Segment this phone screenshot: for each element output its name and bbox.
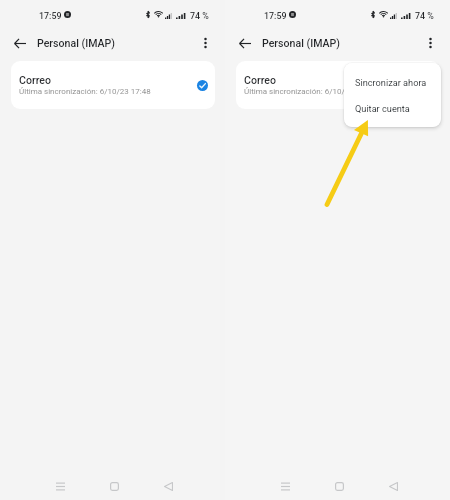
- staticText: 74 %: [190, 11, 209, 21]
- button[interactable]: Correo: [11, 61, 215, 109]
- button[interactable]: Back: [155, 473, 181, 499]
- staticText: Correo: [244, 74, 277, 86]
- staticText: Última sincronización: 6/10/23 17:48: [19, 87, 151, 96]
- staticText: Última sincronización: 6/10/23 17:48: [244, 87, 376, 96]
- staticText: Correo: [19, 74, 52, 86]
- button[interactable]: Home: [326, 473, 352, 499]
- button[interactable]: Navigate up: [9, 32, 31, 54]
- staticText: 17:59: [264, 11, 287, 21]
- button[interactable]: Navigate up: [234, 32, 256, 54]
- button[interactable]: Recents: [47, 473, 73, 499]
- staticText: Personal (IMAP): [262, 37, 341, 49]
- button[interactable]: Quitar cuenta: [344, 95, 441, 122]
- button[interactable]: More options: [194, 32, 216, 54]
- staticText: 17:59: [39, 11, 62, 21]
- button[interactable]: Correo: [236, 61, 440, 109]
- button[interactable]: Home: [101, 473, 127, 499]
- button[interactable]: Back: [380, 473, 406, 499]
- staticText: Personal (IMAP): [37, 37, 116, 49]
- button[interactable]: Sincronizar ahora: [344, 69, 441, 96]
- button[interactable]: More options: [419, 32, 441, 54]
- button[interactable]: Recents: [272, 473, 298, 499]
- staticText: Sincronizar ahora: [355, 77, 427, 88]
- staticText: 74 %: [415, 11, 434, 21]
- staticText: Quitar cuenta: [355, 103, 410, 114]
